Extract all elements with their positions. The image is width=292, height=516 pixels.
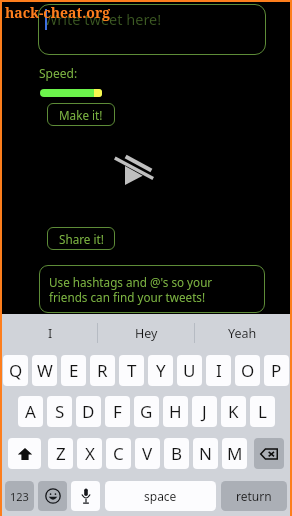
button[interactable]: H [163, 396, 188, 427]
button[interactable]: 123 [5, 481, 34, 511]
staticText: D [82, 400, 95, 423]
button[interactable]: Backspace [254, 438, 284, 469]
staticText: Q [9, 359, 23, 382]
staticText: Z [56, 442, 66, 465]
button[interactable]: V [135, 438, 160, 469]
staticText: O [241, 359, 255, 382]
staticText: A [25, 400, 36, 423]
button[interactable]: Z [48, 438, 73, 469]
staticText: Use hashtags and @'s so your friends can… [49, 274, 213, 306]
button[interactable]: X [77, 438, 102, 469]
staticText: C [113, 442, 124, 465]
staticText: Write tweet here! [44, 9, 162, 29]
button[interactable] [40, 89, 102, 97]
button[interactable]: Make it! [47, 103, 115, 126]
staticText: G [140, 400, 153, 423]
staticText: Yeah [228, 325, 257, 342]
button[interactable]: B [164, 438, 189, 469]
staticText: Hey [135, 325, 158, 342]
button[interactable]: T [119, 355, 144, 386]
button[interactable]: I [206, 355, 231, 386]
button[interactable]: J [192, 396, 217, 427]
button[interactable]: Q [3, 355, 28, 386]
button[interactable]: Yeah [194, 314, 290, 352]
staticText: I [216, 359, 222, 382]
button[interactable]: Share it! [47, 227, 115, 250]
button[interactable]: E [61, 355, 86, 386]
staticText: B [171, 442, 183, 465]
button[interactable]: F [105, 396, 130, 427]
button[interactable]: Emoji [38, 481, 67, 511]
button[interactable]: Voice input [71, 481, 100, 511]
button[interactable]: P [264, 355, 289, 386]
staticText: L [258, 400, 267, 423]
staticText: M [227, 442, 243, 465]
staticText: S [55, 400, 65, 423]
staticText: Y [156, 359, 166, 382]
button[interactable]: I [2, 314, 98, 352]
button[interactable]: K [221, 396, 246, 427]
staticText: V [142, 442, 153, 465]
button[interactable]: S [47, 396, 72, 427]
staticText: R [97, 359, 108, 382]
staticText: 123 [10, 489, 29, 504]
button[interactable]: N [193, 438, 218, 469]
staticText: I [48, 325, 53, 342]
button[interactable]: L [250, 396, 275, 427]
staticText: W [37, 359, 53, 382]
staticText: H [169, 400, 182, 423]
staticText: E [69, 359, 79, 382]
staticText: hack-cheat.org [5, 3, 111, 22]
staticText: return [236, 488, 272, 504]
button[interactable]: U [177, 355, 202, 386]
button[interactable]: W [32, 355, 57, 386]
button[interactable]: A [18, 396, 43, 427]
staticText: T [127, 359, 137, 382]
button[interactable]: R [90, 355, 115, 386]
staticText: P [271, 359, 282, 382]
button[interactable]: M [222, 438, 247, 469]
staticText: Share it! [59, 231, 104, 247]
staticText: U [183, 359, 196, 382]
button[interactable]: return [221, 481, 287, 511]
staticText: Speed: [39, 65, 78, 81]
staticText: X [85, 442, 95, 465]
staticText: J [202, 400, 207, 423]
staticText: space [144, 488, 177, 504]
button[interactable]: O [235, 355, 260, 386]
button[interactable]: Hey [98, 314, 194, 352]
button[interactable]: C [106, 438, 131, 469]
button[interactable]: Y [148, 355, 173, 386]
button[interactable]: Write tweet here! [38, 4, 266, 55]
staticText: F [113, 400, 122, 423]
staticText: K [228, 400, 239, 423]
button[interactable]: D [76, 396, 101, 427]
button[interactable]: Shift [8, 438, 41, 469]
staticText: N [199, 442, 212, 465]
button[interactable]: space [105, 481, 216, 511]
button[interactable]: G [134, 396, 159, 427]
other: Send tweet [112, 153, 156, 187]
staticText: Make it! [59, 107, 103, 123]
